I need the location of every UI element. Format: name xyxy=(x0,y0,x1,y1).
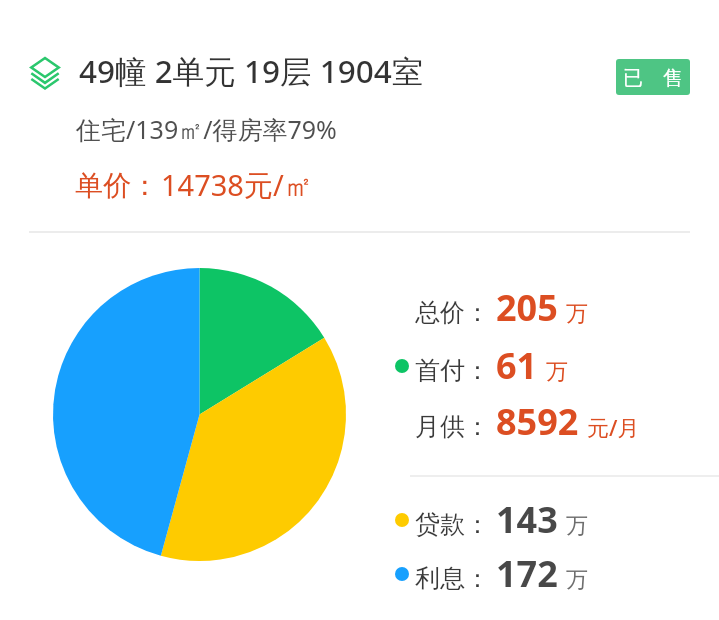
staticText: 元/月 xyxy=(587,412,640,442)
staticText: 172 xyxy=(496,549,558,598)
staticText: 住宅/139㎡/得房率79% xyxy=(76,112,337,146)
staticText: 万 xyxy=(546,358,568,386)
staticText: 万 xyxy=(566,566,588,594)
button[interactable]: 贷款： xyxy=(395,495,588,545)
staticText: 205 xyxy=(496,283,558,332)
staticText: 首付： xyxy=(415,355,496,386)
button[interactable]: 月供： xyxy=(395,397,640,447)
staticText: 单价： xyxy=(75,168,161,203)
staticText: 总价： xyxy=(415,297,496,328)
staticText: 已 售 xyxy=(623,64,683,91)
staticText: 8592 xyxy=(496,397,579,446)
button[interactable]: 已 售 xyxy=(616,59,690,95)
button[interactable]: 利息： xyxy=(395,549,588,599)
staticText: 143 xyxy=(496,495,558,544)
button[interactable]: 首付： xyxy=(395,341,568,391)
staticText: 14738元/㎡ xyxy=(161,165,313,205)
staticText: 万 xyxy=(566,300,588,328)
staticText: 利息： xyxy=(415,563,496,594)
staticText: 贷款： xyxy=(415,509,496,540)
staticText: 49幢 2单元 19层 1904室 xyxy=(79,49,424,92)
staticText: 月供： xyxy=(415,411,496,442)
staticText: 61 xyxy=(496,341,538,390)
staticText: 万 xyxy=(566,512,588,540)
button[interactable]: 总价： xyxy=(395,283,588,333)
